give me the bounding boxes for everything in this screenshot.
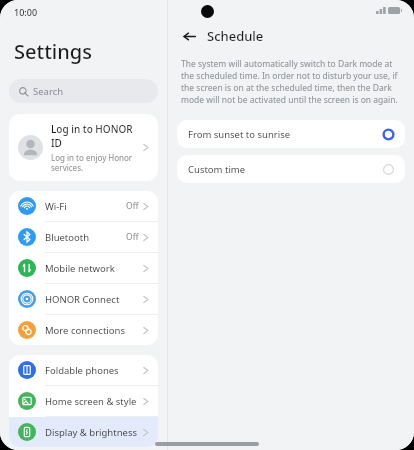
- staticText: Log in to HONOR ID: [51, 122, 139, 150]
- staticText: Off: [126, 200, 139, 212]
- button[interactable]: Back: [179, 26, 199, 46]
- staticText: Wi-Fi: [45, 200, 126, 213]
- staticText: 10:00: [14, 6, 38, 18]
- staticText: More connections: [45, 324, 143, 337]
- button[interactable]: Display & brightness: [9, 417, 158, 447]
- button[interactable]: Foldable phones: [9, 355, 158, 385]
- button[interactable]: Mobile network: [9, 253, 158, 283]
- staticText: HONOR Connect: [45, 293, 143, 306]
- staticText: Log in to enjoy Honor services.: [51, 152, 139, 173]
- button[interactable]: HONOR Connect: [9, 284, 158, 314]
- staticText: The system will automatically switch to …: [181, 58, 401, 106]
- button[interactable]: More connections: [9, 315, 158, 345]
- staticText: Schedule: [207, 27, 264, 45]
- staticText: Off: [126, 231, 139, 243]
- button[interactable]: Search: [9, 79, 158, 103]
- staticText: Mobile network: [45, 262, 143, 275]
- button[interactable]: Home screen & style: [9, 386, 158, 416]
- staticText: Settings: [14, 38, 92, 65]
- staticText: Home screen & style: [45, 395, 143, 408]
- button[interactable]: Custom time: [177, 155, 405, 183]
- button[interactable]: Wi-Fi: [9, 191, 158, 221]
- staticText: Custom time: [188, 163, 383, 176]
- button[interactable]: From sunset to sunrise: [177, 120, 405, 148]
- staticText: Foldable phones: [45, 364, 143, 377]
- button[interactable]: Log in to HONOR ID: [9, 114, 158, 181]
- staticText: From sunset to sunrise: [188, 128, 383, 141]
- staticText: Bluetooth: [45, 231, 126, 244]
- button[interactable]: Bluetooth: [9, 222, 158, 252]
- staticText: Search: [33, 85, 64, 98]
- staticText: Display & brightness: [45, 426, 143, 439]
